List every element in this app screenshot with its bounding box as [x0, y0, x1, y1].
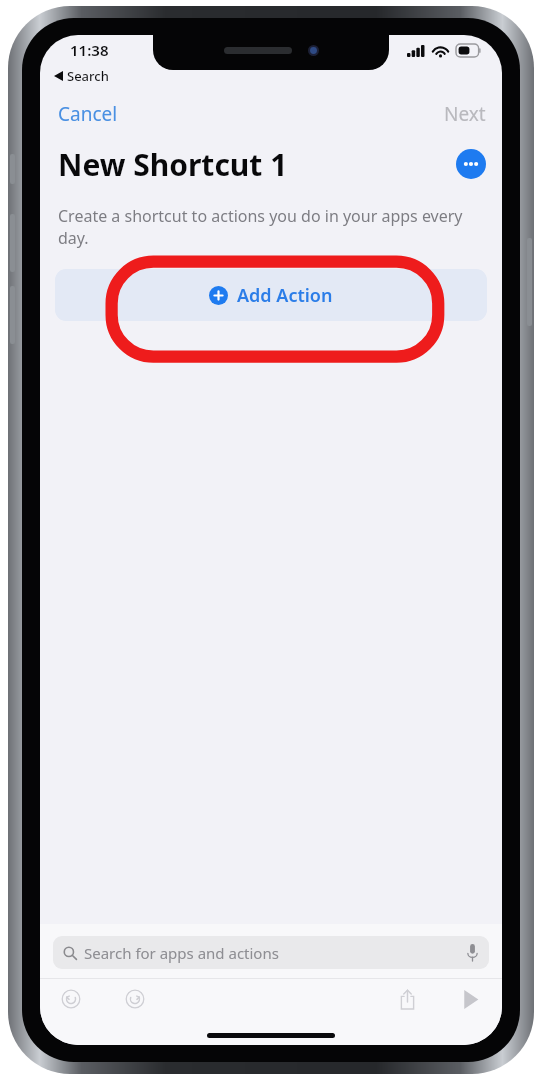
staticText: 11:38	[70, 40, 109, 60]
button[interactable]: Search	[54, 65, 502, 87]
staticText: Cancel	[58, 101, 118, 125]
staticText: Next	[444, 101, 486, 125]
button[interactable]: Cancel	[40, 97, 136, 129]
button[interactable]: Share	[392, 984, 422, 1014]
staticText: New Shortcut 1	[58, 144, 288, 185]
staticText: Add Action	[237, 283, 333, 308]
staticText: Create a shortcut to actions you do in y…	[58, 205, 480, 249]
button[interactable]: More options	[456, 149, 486, 179]
button[interactable]: Redo	[120, 984, 150, 1014]
button[interactable]: Search for apps and actions	[53, 936, 489, 969]
staticText: Search for apps and actions	[84, 943, 279, 963]
button[interactable]: Next	[428, 97, 502, 129]
button[interactable]: Undo	[56, 984, 86, 1014]
button[interactable]: Play	[456, 984, 486, 1014]
button[interactable]: Add Action	[55, 269, 487, 321]
staticText: Search	[67, 67, 109, 85]
